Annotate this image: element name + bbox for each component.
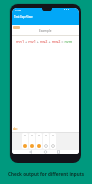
button[interactable]: 11:43: [12, 8, 79, 25]
button[interactable]: [29, 133, 35, 149]
staticText: 11:43: [15, 8, 22, 11]
staticText: Test ExprView: [14, 15, 33, 19]
button[interactable]: [43, 133, 49, 149]
button[interactable]: [12, 150, 79, 154]
staticText: Check output for different inputs: [8, 171, 84, 177]
button[interactable]: [36, 133, 42, 149]
staticText: mn1 + mv1 + nw2 + mw2 = nvm: [16, 39, 73, 44]
staticText: abc: [13, 127, 18, 131]
button[interactable]: [50, 133, 56, 149]
button[interactable]: Example: [39, 29, 52, 33]
button[interactable]: [22, 133, 28, 149]
